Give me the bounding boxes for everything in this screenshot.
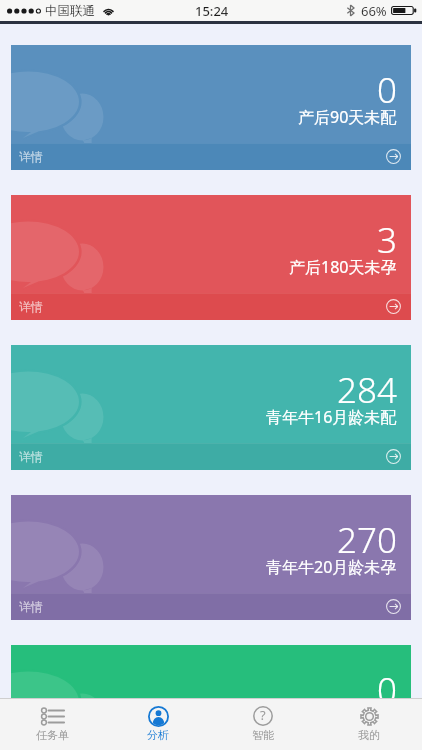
staticText: 青年牛20月龄未孕 <box>266 556 397 578</box>
button[interactable]: 任务单 <box>0 698 105 750</box>
staticText: 详情 <box>19 449 43 464</box>
other: 详情 <box>386 449 401 464</box>
staticText: 详情 <box>19 299 43 314</box>
other: 智能 <box>253 706 273 726</box>
staticText: 270 <box>337 516 397 564</box>
other: 分析 <box>148 706 169 727</box>
other: 详情 <box>386 299 401 314</box>
other: 我的 <box>360 707 379 726</box>
button[interactable]: 智能 <box>210 698 316 750</box>
staticText: 284 <box>337 366 397 414</box>
staticText: 青年牛16月龄未配 <box>266 406 397 428</box>
other: 详情 <box>386 149 401 164</box>
other: 详情 <box>386 599 401 614</box>
staticText: 15:24 <box>195 2 229 20</box>
other: 任务单 <box>42 709 64 724</box>
button[interactable]: 详情 <box>11 345 411 470</box>
staticText: 66% <box>361 2 387 20</box>
button[interactable]: 详情 <box>11 45 411 170</box>
button[interactable]: 详情 <box>11 495 411 620</box>
staticText: 0 <box>377 666 397 698</box>
staticText: 分析 <box>147 728 169 742</box>
staticText: ? <box>260 706 266 724</box>
staticText: 产后180天未孕 <box>289 256 397 278</box>
button[interactable]: 我的 <box>316 698 422 750</box>
staticText: 详情 <box>19 149 43 164</box>
button[interactable]: 详情 <box>11 645 411 698</box>
button[interactable]: 详情 <box>11 195 411 320</box>
staticText: 中国联通 <box>45 3 95 19</box>
staticText: 0 <box>377 66 397 114</box>
button[interactable]: 分析 <box>105 698 210 750</box>
staticText: 3 <box>377 216 397 264</box>
staticText: 详情 <box>19 599 43 614</box>
staticText: 智能 <box>252 728 274 742</box>
staticText: 我的 <box>358 728 380 742</box>
staticText: 产后90天未配 <box>298 106 397 128</box>
staticText: 任务单 <box>36 728 69 742</box>
